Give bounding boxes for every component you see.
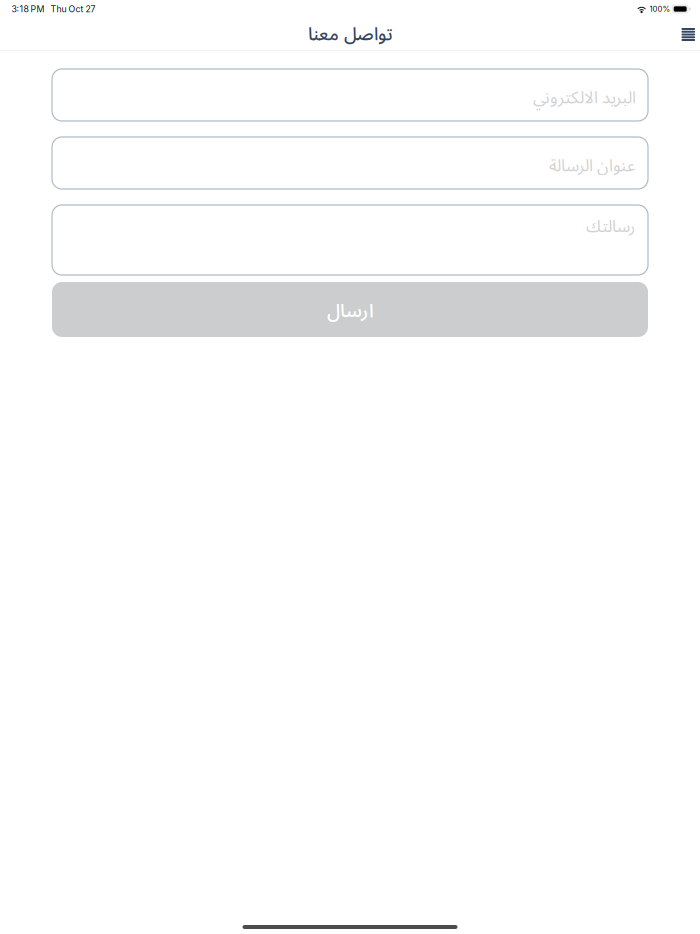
staticText: ارسال <box>326 291 373 330</box>
button[interactable]: ارسال <box>52 282 648 337</box>
staticText: 100% <box>649 4 670 14</box>
staticText: Thu Oct 27 <box>50 4 95 14</box>
staticText: تواصل معنا <box>307 15 392 53</box>
staticText: عنوان الرسالة <box>548 148 635 184</box>
staticText: 3:18 PM <box>11 4 44 14</box>
button[interactable]: Menu <box>674 19 700 49</box>
staticText: رسالتك <box>585 209 635 244</box>
staticText: البريد الالكتروني <box>532 80 635 116</box>
